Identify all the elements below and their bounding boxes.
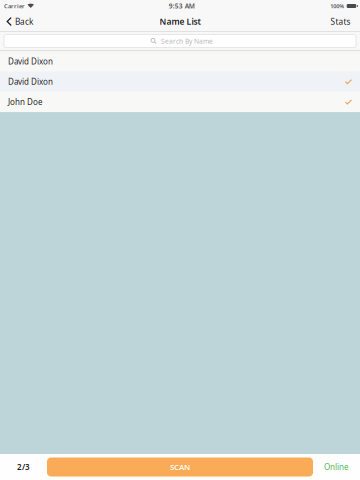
- staticText: 2/3: [17, 462, 30, 472]
- staticText: 100%: [330, 2, 344, 10]
- staticText: Search By Name: [161, 37, 213, 46]
- staticText: 9:53 AM: [169, 2, 195, 10]
- staticText: John Doe: [8, 97, 43, 107]
- staticText: Stats: [330, 16, 350, 27]
- button[interactable]: Online: [313, 462, 360, 472]
- button[interactable]: Stats: [320, 12, 360, 31]
- button[interactable]: David Dixon: [0, 51, 360, 71]
- staticText: Carrier: [4, 2, 25, 10]
- button[interactable]: David Dixon: [0, 71, 360, 92]
- staticText: Online: [324, 462, 349, 472]
- button[interactable]: Back: [0, 12, 43, 31]
- staticText: Back: [15, 16, 33, 27]
- staticText: Name List: [159, 16, 200, 27]
- button[interactable]: Search By Name: [0, 32, 360, 51]
- staticText: David Dixon: [8, 76, 53, 87]
- staticText: David Dixon: [8, 56, 53, 67]
- button[interactable]: SCAN: [47, 457, 313, 476]
- button[interactable]: John Doe: [0, 92, 360, 112]
- staticText: SCAN: [170, 462, 190, 472]
